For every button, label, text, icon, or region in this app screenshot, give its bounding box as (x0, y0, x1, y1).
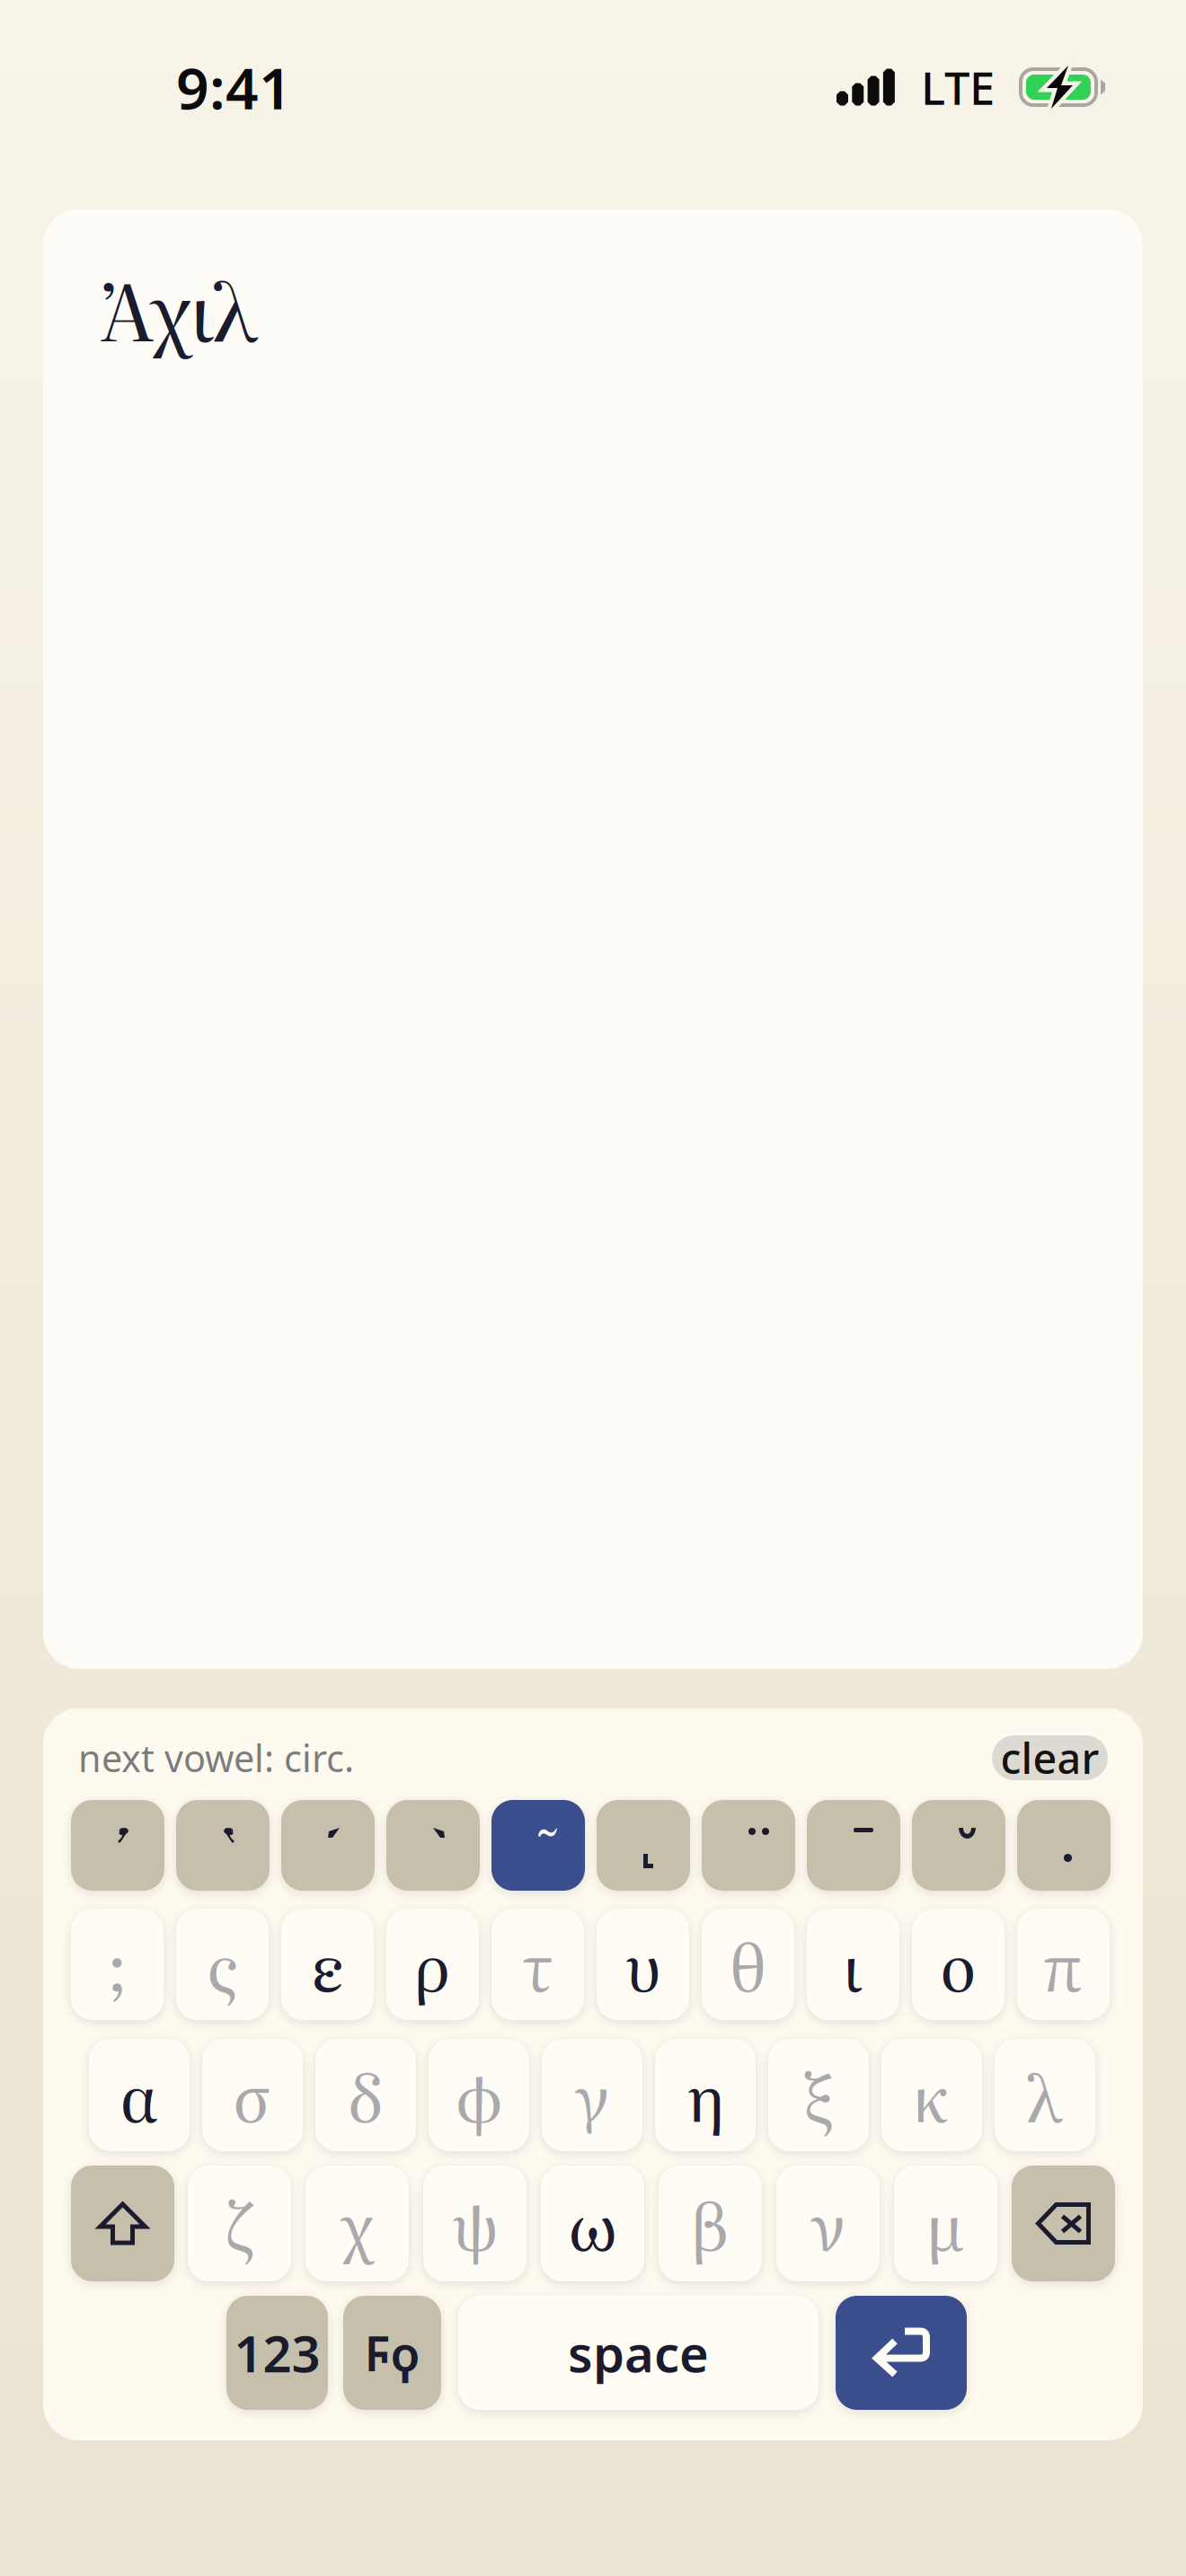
staticText: ω (568, 2177, 617, 2270)
staticText: ρ (415, 1918, 450, 2011)
staticText: ο (940, 1918, 976, 2011)
staticText: ν (810, 2177, 845, 2270)
button[interactable]: ο (912, 1909, 1005, 2020)
button[interactable]: ; (71, 1909, 164, 2020)
button[interactable]: ζ (188, 2166, 291, 2281)
staticText: 123 (234, 2319, 320, 2386)
button[interactable]: Diacritic (597, 1800, 690, 1891)
button[interactable]: Diacritic (912, 1800, 1005, 1891)
button[interactable]: κ (881, 2039, 982, 2151)
button[interactable]: Diacritic (702, 1800, 795, 1891)
button[interactable]: Return (836, 2296, 967, 2410)
button[interactable]: λ (995, 2039, 1095, 2151)
button[interactable]: χ (305, 2166, 409, 2281)
staticText: ι (844, 1918, 862, 2011)
button[interactable]: 123 (226, 2296, 328, 2410)
button[interactable]: ι (807, 1909, 899, 2020)
button[interactable]: ν (776, 2166, 880, 2281)
staticText: η (687, 2049, 724, 2141)
staticText: β (691, 2177, 729, 2270)
button[interactable]: Diacritic (281, 1800, 375, 1891)
button[interactable]: Diacritic (71, 1800, 164, 1891)
staticText: ζ (226, 2177, 253, 2270)
staticText: τ (522, 1918, 553, 2011)
button[interactable]: Diacritic (807, 1800, 900, 1891)
staticText: υ (625, 1918, 661, 2011)
staticText: φ (456, 2049, 502, 2141)
button[interactable]: τ (491, 1909, 584, 2020)
button[interactable]: Diacritic (386, 1800, 480, 1891)
button[interactable]: η (655, 2039, 756, 2151)
button[interactable]: ω (541, 2166, 644, 2281)
staticText: ε (311, 1918, 344, 2011)
button[interactable]: σ (202, 2039, 303, 2151)
staticText: Ἀχιλ (101, 249, 258, 366)
button[interactable]: ρ (386, 1909, 479, 2020)
staticText: χ (341, 2177, 374, 2270)
button[interactable]: δ (315, 2039, 416, 2151)
button[interactable]: β (659, 2166, 762, 2281)
button[interactable]: Diacritic (491, 1800, 585, 1891)
staticText: 9:41 (176, 49, 292, 125)
button[interactable]: space (458, 2296, 819, 2410)
staticText: space (568, 2319, 709, 2386)
staticText: ς (207, 1918, 238, 2011)
staticText: μ (927, 2177, 965, 2270)
button[interactable]: θ (702, 1909, 794, 2020)
staticText: LTE (921, 57, 995, 117)
button[interactable]: Ϝϙ (343, 2296, 441, 2410)
button[interactable]: γ (542, 2039, 642, 2151)
button[interactable]: ξ (768, 2039, 869, 2151)
staticText: σ (233, 2049, 272, 2141)
button[interactable]: Delete (1012, 2166, 1115, 2281)
staticText: λ (1027, 2049, 1062, 2141)
staticText: α (120, 2049, 159, 2141)
button[interactable]: ε (281, 1909, 374, 2020)
button[interactable]: μ (894, 2166, 997, 2281)
button[interactable]: α (89, 2039, 190, 2151)
button[interactable]: ς (176, 1909, 269, 2020)
staticText: δ (349, 2049, 383, 2141)
staticText: next vowel: circ. (78, 1733, 354, 1782)
button[interactable]: ψ (423, 2166, 527, 2281)
staticText: Ϝϙ (364, 2321, 420, 2385)
button[interactable]: φ (429, 2039, 529, 2151)
staticText: ψ (451, 2177, 498, 2270)
staticText: κ (914, 2049, 950, 2141)
button[interactable]: Diacritic (1017, 1800, 1111, 1891)
button[interactable]: Diacritic (176, 1800, 270, 1891)
staticText: ξ (804, 2049, 833, 2141)
button[interactable]: Shift (71, 2166, 174, 2281)
staticText: θ (730, 1918, 766, 2011)
staticText: clear (1000, 1730, 1099, 1786)
button[interactable]: υ (597, 1909, 689, 2020)
staticText: ; (107, 1918, 128, 2011)
staticText: π (1044, 1918, 1083, 2011)
staticText: γ (575, 2049, 610, 2141)
button[interactable]: clear (992, 1735, 1108, 1780)
button[interactable]: π (1017, 1909, 1110, 2020)
